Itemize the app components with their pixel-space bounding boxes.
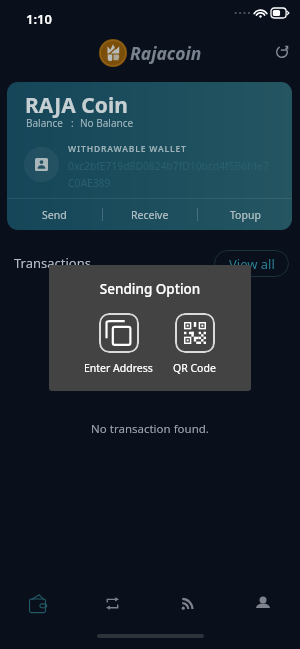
button[interactable]: Wallet xyxy=(0,575,75,631)
staticText: Enter Address xyxy=(84,361,153,375)
button[interactable]: Refresh xyxy=(270,40,294,64)
button[interactable]: Receive xyxy=(103,199,197,230)
staticText: WITHDRAWABLE WALLET xyxy=(68,143,187,155)
button[interactable]: Feed xyxy=(150,575,225,631)
button[interactable]: Enter Address xyxy=(84,313,153,375)
button[interactable]: Topup xyxy=(198,199,292,230)
staticText: View all xyxy=(229,255,275,273)
staticText: Rajacoin xyxy=(130,41,202,65)
staticText: 0xc2bfE719d8D0824b7fD10bcd4f5B6fde7 C0AE… xyxy=(68,159,269,190)
staticText: 1:10 xyxy=(26,10,52,28)
staticText: Balance xyxy=(26,116,63,130)
staticText: Topup xyxy=(230,208,261,222)
button[interactable]: Profile xyxy=(225,575,300,631)
staticText: RAJA Coin xyxy=(25,91,128,120)
staticText: : xyxy=(71,116,74,130)
staticText: Send xyxy=(42,208,67,222)
staticText: No Balance xyxy=(80,116,134,130)
button[interactable]: QR Code xyxy=(173,313,216,375)
staticText: Transactions xyxy=(14,254,91,272)
button[interactable]: Swap xyxy=(75,575,150,631)
staticText: No transaction found. xyxy=(0,421,300,437)
button[interactable]: View all xyxy=(214,250,289,277)
staticText: Receive xyxy=(131,208,169,222)
staticText: QR Code xyxy=(173,361,216,375)
staticText: Sending Option xyxy=(49,280,251,298)
button[interactable]: Send xyxy=(7,199,102,230)
